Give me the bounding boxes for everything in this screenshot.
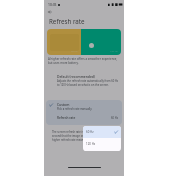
staticText: 60 Hz [86,130,94,134]
staticText: A higher refresh rate offers a smoother … [48,57,118,65]
staticText: 60 Hz [71,49,78,52]
staticText: Pick a refresh rate manually. [57,107,93,111]
staticText: 60 Hz [111,116,118,120]
staticText: 120 Hz [110,49,118,52]
staticText: Refresh rate [49,17,85,25]
staticText: Refresh rate [57,116,76,120]
staticText: 10:35 [48,2,57,7]
button[interactable]: Default (recommended) [46,73,122,88]
staticText: 120 Hz [86,142,96,146]
staticText: Adjusts the refresh rate automatically f… [57,79,119,87]
button[interactable]: Back [46,8,54,16]
button[interactable]: 120 Hz [83,138,121,150]
staticText: Default (recommended) [57,74,95,79]
staticText: The screen refresh rate is the number of… [52,130,119,142]
button[interactable]: Custom [46,100,122,112]
button[interactable]: 60 Hz [83,126,121,138]
button[interactable]: Refresh rate [46,112,122,125]
staticText: Custom [57,102,70,107]
